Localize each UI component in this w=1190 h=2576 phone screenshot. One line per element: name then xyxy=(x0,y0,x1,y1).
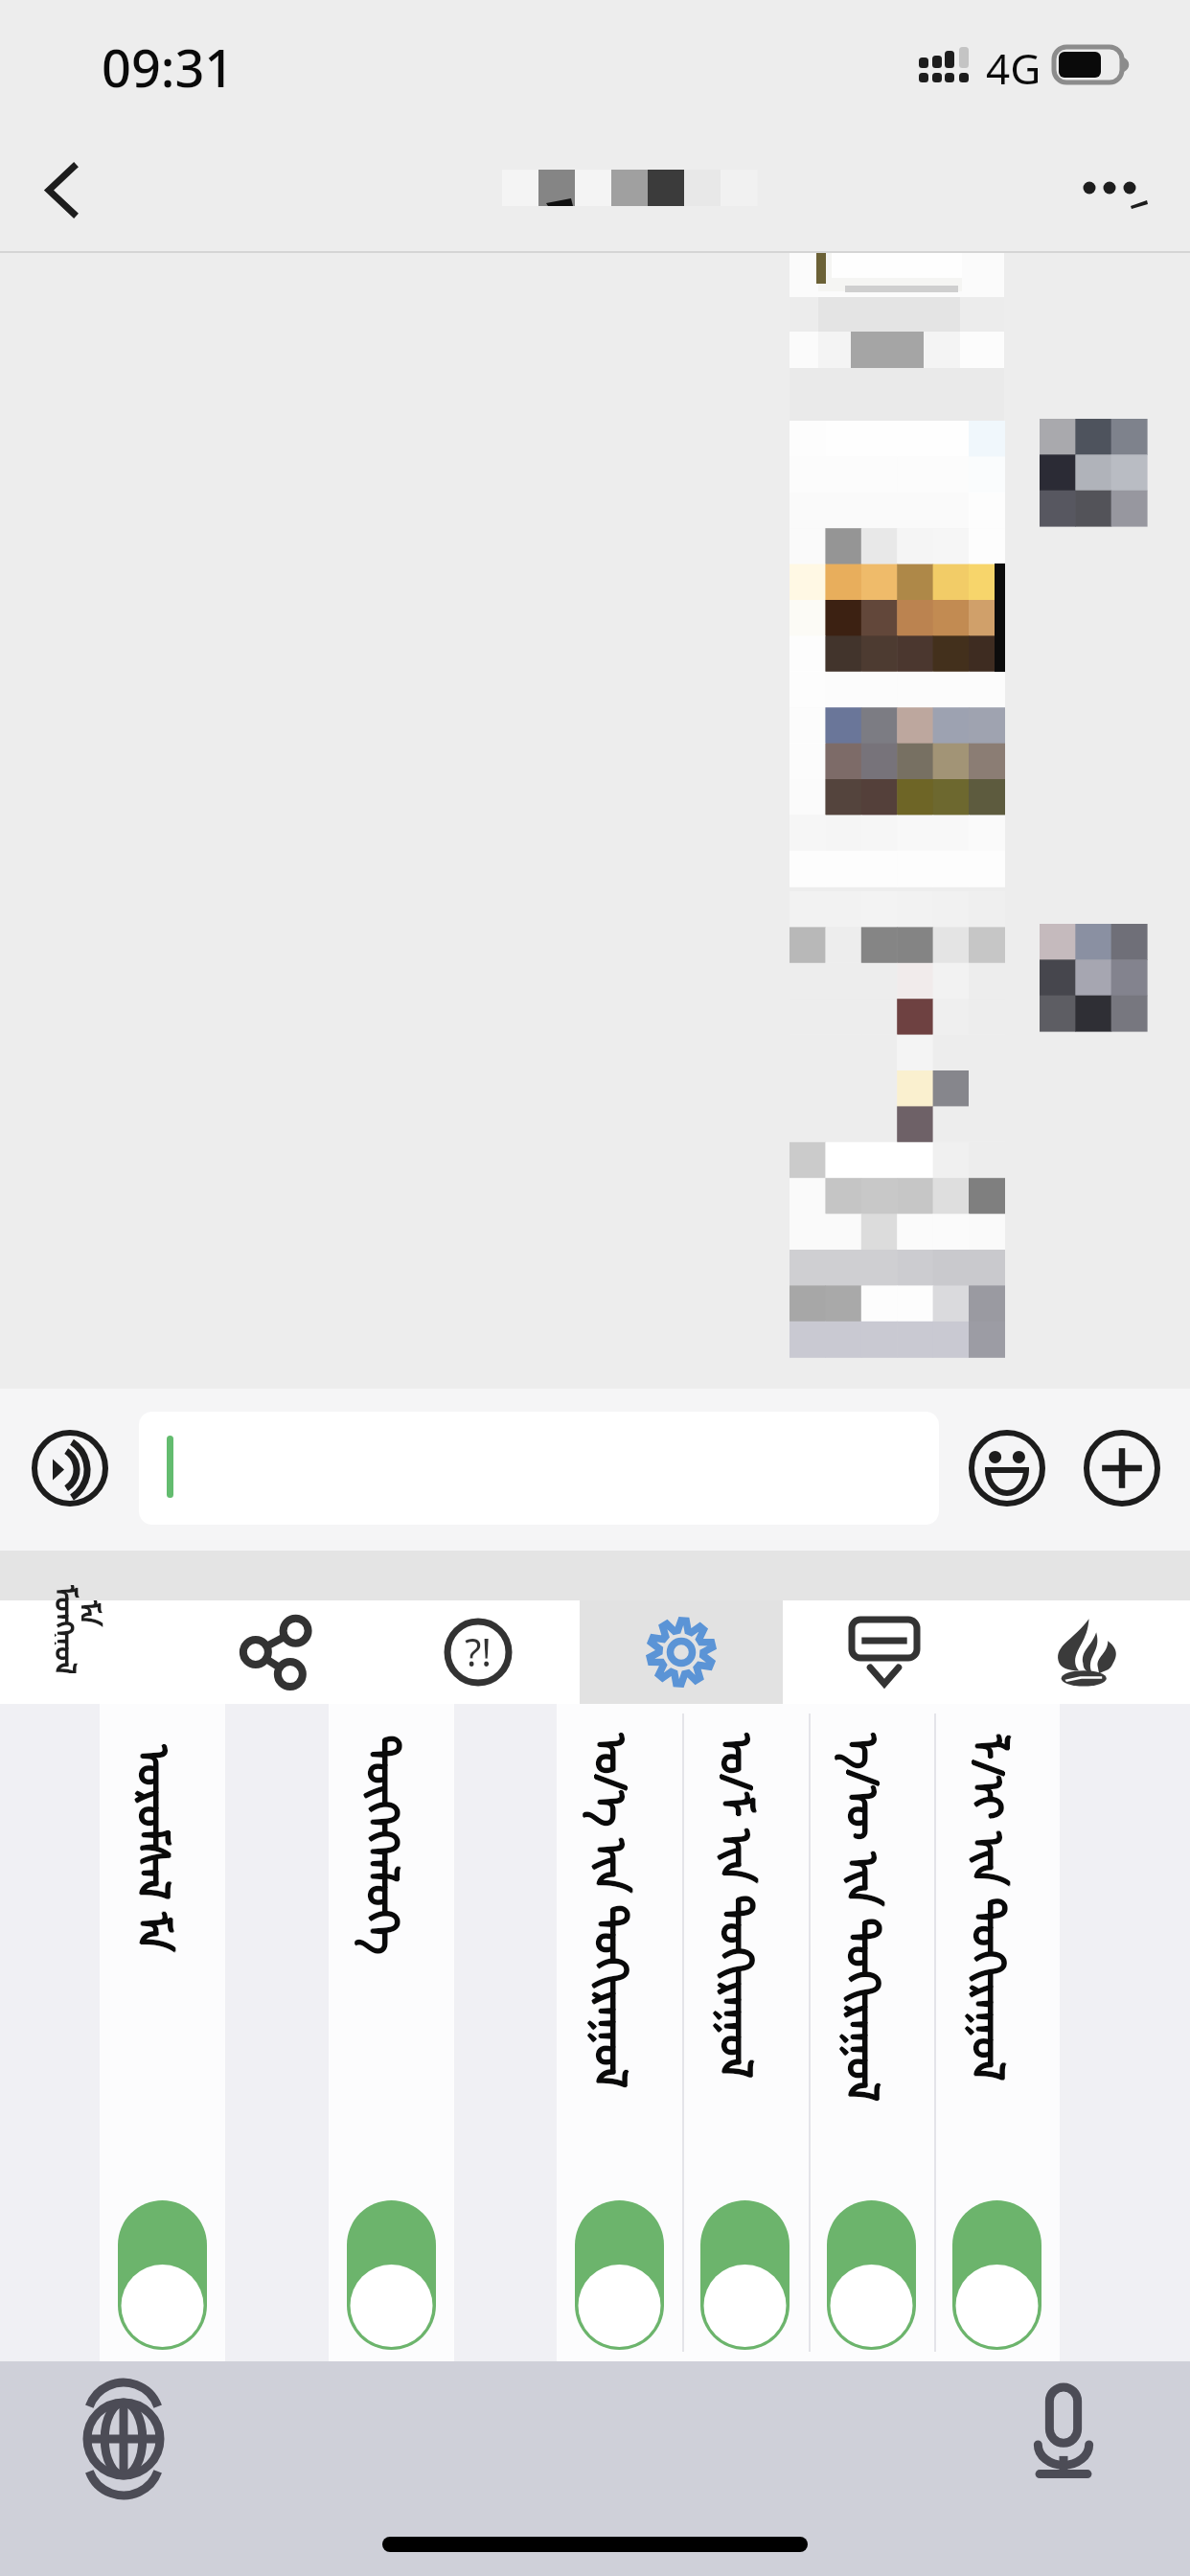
staticText: ᠤ/ᠮ ᠢᠨ ᠲᠣᠭᠢᠷᠡᠭᠤᠯ xyxy=(708,1733,785,2079)
staticText: ᠣᠷᠦᠮᠰᠡᠯ ᠮᠡ xyxy=(123,1745,201,1953)
staticText: ᠣᠷᠦᠮᠰᠡᠯ ᠮᠡ xyxy=(124,1746,202,1954)
staticText: ᠤ/ᠡ ᠢᠨ ᠲᠣᠭᠢᠷᠡᠭᠤᠯ xyxy=(580,1733,658,2089)
staticText: ᠣᠷᠦᠮᠰᠡᠯ ᠮᠡ xyxy=(124,1744,202,1952)
button[interactable]: Voice input xyxy=(1006,2377,1121,2492)
button[interactable]: Share xyxy=(173,1600,377,1704)
staticText: ᠮᠤᠩᠭᠣᠯ xyxy=(55,1585,97,1673)
staticText: ᠯ/ᠢ ᠢᠨ ᠲᠣᠭᠢᠷᠡᠭᠤᠯ xyxy=(958,1733,1035,2082)
button[interactable]: Back xyxy=(0,134,123,245)
staticText: ᠤ/ᠮ ᠢᠨ ᠲᠣᠭᠢᠷᠡᠭᠤᠯ xyxy=(706,1733,783,2079)
button[interactable]: Keyboard option xyxy=(329,1704,454,2361)
staticText: ᠡ/ᠦ ᠢᠨ ᠲᠣᠭᠢᠷᠡᠭᠤᠯ xyxy=(833,1733,911,2102)
staticText: 09:31 xyxy=(102,32,235,103)
button[interactable]: Hide keyboard xyxy=(783,1600,986,1704)
button[interactable]: Mongolian input xyxy=(0,1600,173,1704)
staticText: ᠤ/ᠡ ᠢᠨ ᠲᠣᠭᠢᠷᠡᠭᠤᠯ xyxy=(582,1733,660,2089)
button[interactable]: Settings xyxy=(580,1600,783,1704)
staticText: ᠮᠡ xyxy=(81,1600,120,1627)
button[interactable]: Change keyboard language xyxy=(67,2382,180,2495)
staticText: 4G xyxy=(986,39,1041,97)
staticText: ᠳᠦᠭᠡᠭᠡᠨᠯᠦᠭᠡ xyxy=(353,1735,431,1955)
staticText: ᠡ/ᠦ ᠢᠨ ᠲᠣᠭᠢᠷᠡᠭᠤᠯ xyxy=(834,1733,912,2102)
button[interactable]: Keyboard option xyxy=(934,1704,1060,2361)
button[interactable]: Keyboard option xyxy=(682,1704,808,2361)
staticText: ᠡ/ᠦ ᠢᠨ ᠲᠣᠭᠢᠷᠡᠭᠤᠯ xyxy=(833,1732,911,2101)
staticText: ᠳᠦᠭᠡᠭᠡᠨᠯᠦᠭᠡ xyxy=(352,1735,430,1955)
staticText: ᠤ/ᠡ ᠢᠨ ᠲᠣᠭᠢᠷᠡᠭᠤᠯ xyxy=(581,1734,659,2090)
staticText: ?! xyxy=(465,1625,492,1677)
staticText: ᠤ/ᠡ ᠢᠨ ᠲᠣᠭᠢᠷᠡᠭᠤᠯ xyxy=(581,1733,659,2089)
staticText: ᠳᠦᠭᠡᠭᠡᠨᠯᠦᠭᠡ xyxy=(353,1736,431,1956)
staticText: ᠣᠷᠦᠮᠰᠡᠯ ᠮᠡ xyxy=(125,1745,203,1953)
button[interactable]: More options xyxy=(1064,134,1177,245)
staticText: ᠤ/ᠮ ᠢᠨ ᠲᠣᠭᠢᠷᠡᠭᠤᠯ xyxy=(707,1732,784,2078)
staticText: ᠤ/ᠮ ᠢᠨ ᠲᠣᠭᠢᠷᠡᠭᠤᠯ xyxy=(707,1733,784,2079)
button[interactable]: More actions xyxy=(1064,1411,1179,1526)
staticText: ᠳᠦᠭᠡᠭᠡᠨᠯᠦᠭᠡ xyxy=(354,1735,432,1955)
button[interactable]: Keyboard option xyxy=(809,1704,934,2361)
button[interactable]: Emoji xyxy=(950,1411,1064,1526)
button[interactable]: Theme xyxy=(986,1600,1189,1704)
staticText: ᠯ/ᠢ ᠢᠨ ᠲᠣᠭᠢᠷᠡᠭᠤᠯ xyxy=(959,1733,1036,2082)
staticText: ᠡ/ᠦ ᠢᠨ ᠲᠣᠭᠢᠷᠡᠭᠤᠯ xyxy=(833,1734,911,2103)
button[interactable]: Voice message xyxy=(12,1411,127,1526)
staticText: ᠳᠦᠭᠡᠭᠡᠨᠯᠦᠭᠡ xyxy=(353,1734,431,1955)
button[interactable]: Help xyxy=(377,1600,580,1704)
staticText: ᠤ/ᠮ ᠢᠨ ᠲᠣᠭᠢᠷᠡᠭᠤᠯ xyxy=(707,1734,784,2080)
staticText: ᠣᠷᠦᠮᠰᠡᠯ ᠮᠡ xyxy=(124,1745,202,1953)
button[interactable] xyxy=(139,1412,939,1525)
staticText: ᠯ/ᠢ ᠢᠨ ᠲᠣᠭᠢᠷᠡᠭᠤᠯ xyxy=(959,1734,1036,2083)
button[interactable]: Keyboard option xyxy=(100,1704,225,2361)
staticText: ᠤ/ᠡ ᠢᠨ ᠲᠣᠭᠢᠷᠡᠭᠤᠯ xyxy=(581,1732,659,2088)
staticText: ᠯ/ᠢ ᠢᠨ ᠲᠣᠭᠢᠷᠡᠭᠤᠯ xyxy=(960,1733,1037,2082)
button[interactable]: Keyboard option xyxy=(557,1704,682,2361)
staticText: ᠯ/ᠢ ᠢᠨ ᠲᠣᠭᠢᠷᠡᠭᠤᠯ xyxy=(959,1732,1036,2081)
staticText: ᠡ/ᠦ ᠢᠨ ᠲᠣᠭᠢᠷᠡᠭᠤᠯ xyxy=(832,1733,910,2102)
